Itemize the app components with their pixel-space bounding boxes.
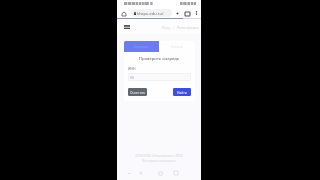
button[interactable]: 00: [128, 73, 191, 81]
staticText: khspu.edu.ru/queue: [137, 11, 169, 16]
button[interactable]: Share: [174, 10, 181, 17]
button[interactable]: Регистрация: [176, 25, 200, 30]
button[interactable]: Tabs: [184, 10, 191, 17]
button[interactable]: Вход: [161, 25, 172, 30]
staticText: ИНН: [128, 66, 136, 71]
staticText: Регистрация: [177, 25, 199, 30]
staticText: 00: [130, 75, 134, 80]
staticText: Все права защищены: [142, 159, 176, 163]
button[interactable]: Home: [154, 166, 166, 180]
button[interactable]: Очередь: [124, 41, 159, 52]
button[interactable]: Back: [134, 166, 146, 180]
staticText: Найти: [177, 90, 187, 94]
staticText: Вход: [162, 25, 171, 30]
button[interactable]: Home: [120, 10, 127, 17]
staticText: Запись: [171, 44, 183, 49]
button[interactable]: More options: [193, 10, 199, 16]
staticText: Очистить: [130, 90, 146, 94]
staticText: ФГБОУ ВО «Университет» 2024: [135, 154, 183, 158]
staticText: Очередь: [134, 44, 149, 49]
staticText: Проверить очередь: [139, 56, 180, 62]
button[interactable]: Очистить: [128, 88, 147, 96]
button[interactable]: khspu.edu.ru/queue: [131, 9, 172, 17]
button[interactable]: Найти: [173, 88, 191, 96]
button[interactable]: Recent apps: [170, 166, 182, 180]
button[interactable]: Menu: [123, 23, 131, 31]
